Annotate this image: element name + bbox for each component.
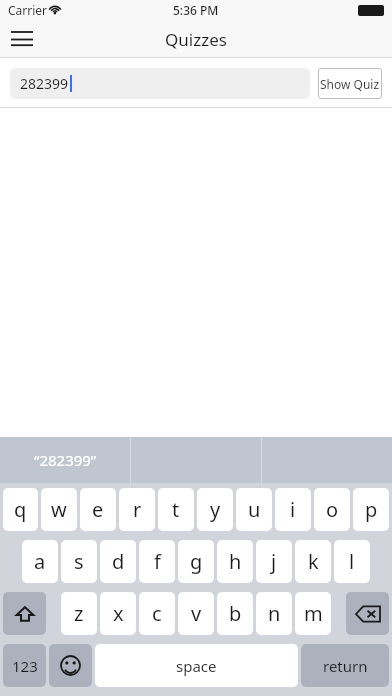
staticText: q — [14, 496, 27, 523]
button[interactable]: k — [295, 540, 331, 583]
button[interactable]: p — [353, 488, 389, 531]
staticText: z — [74, 600, 84, 627]
staticText: l — [349, 548, 355, 575]
staticText: 5:36 PM — [173, 2, 219, 18]
staticText: c — [152, 600, 162, 627]
button[interactable]: q — [3, 488, 38, 531]
button[interactable]: f — [139, 540, 175, 583]
staticText: r — [133, 496, 142, 523]
staticText: return — [323, 656, 368, 676]
button[interactable]: r — [119, 488, 155, 531]
button[interactable]: g — [178, 540, 214, 583]
button[interactable]: return — [301, 644, 389, 687]
staticText: h — [229, 548, 242, 575]
staticText: x — [113, 600, 124, 627]
staticText: d — [112, 548, 125, 575]
button[interactable]: j — [256, 540, 292, 583]
button[interactable]: n — [256, 592, 292, 635]
button[interactable]: x — [100, 592, 136, 635]
button[interactable]: a — [22, 540, 58, 583]
button[interactable]: 282399 — [10, 68, 310, 99]
staticText: e — [92, 496, 104, 523]
button[interactable]: m — [295, 592, 331, 635]
staticText: Quizzes — [165, 28, 227, 51]
staticText: k — [308, 548, 319, 575]
staticText: Carrier — [8, 2, 48, 18]
button[interactable]: h — [217, 540, 253, 583]
button[interactable]: d — [100, 540, 136, 583]
staticText: i — [290, 496, 296, 523]
staticText: 123 — [12, 656, 38, 676]
button[interactable]: Backspace — [346, 592, 389, 635]
staticText: w — [51, 496, 67, 523]
button[interactable]: Show Quiz — [318, 68, 382, 99]
button[interactable]: Menu — [0, 20, 44, 58]
staticText: 282399 — [20, 74, 69, 93]
staticText: f — [154, 548, 161, 575]
button[interactable]: b — [217, 592, 253, 635]
staticText: j — [271, 548, 277, 575]
staticText: u — [248, 496, 261, 523]
button[interactable]: t — [158, 488, 194, 531]
staticText: s — [74, 548, 84, 575]
staticText: p — [365, 496, 378, 523]
button[interactable]: u — [236, 488, 272, 531]
button[interactable]: l — [334, 540, 370, 583]
button[interactable]: s — [61, 540, 97, 583]
staticText: space — [176, 656, 217, 676]
button[interactable]: Emoji — [49, 644, 92, 687]
button[interactable]: v — [178, 592, 214, 635]
button[interactable]: space — [95, 644, 298, 687]
staticText: g — [190, 548, 203, 575]
staticText: y — [210, 496, 221, 523]
button[interactable]: z — [61, 592, 97, 635]
staticText: o — [326, 496, 339, 523]
button[interactable]: e — [80, 488, 116, 531]
staticText: t — [172, 496, 180, 523]
staticText: “282399” — [34, 450, 97, 470]
button[interactable]: y — [197, 488, 233, 531]
button[interactable]: “282399” — [0, 437, 130, 483]
button[interactable]: Shift — [3, 592, 46, 635]
staticText: n — [268, 600, 281, 627]
button[interactable]: i — [275, 488, 311, 531]
staticText: Show Quiz — [320, 76, 380, 92]
staticText: m — [304, 600, 323, 627]
button[interactable]: 123 — [3, 644, 46, 687]
button[interactable]: c — [139, 592, 175, 635]
button[interactable]: w — [41, 488, 77, 531]
staticText: b — [229, 600, 242, 627]
button[interactable]: o — [314, 488, 350, 531]
staticText: a — [34, 548, 46, 575]
staticText: v — [191, 600, 202, 627]
